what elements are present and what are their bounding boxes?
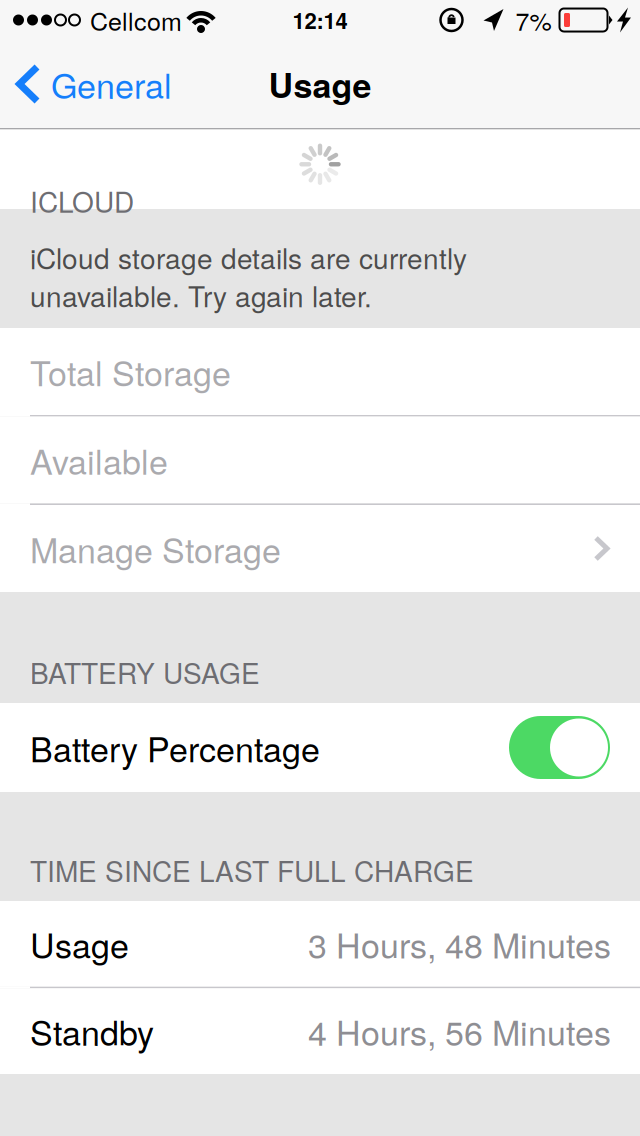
button[interactable]: Usage xyxy=(0,901,640,987)
button[interactable]: Available xyxy=(0,416,640,503)
staticText: Usage xyxy=(268,60,371,108)
staticText: Cellcom xyxy=(90,2,182,38)
staticText: 7% xyxy=(515,2,551,38)
button[interactable]: General xyxy=(0,40,184,128)
staticText: 3 Hours, 48 Minutes xyxy=(308,919,611,968)
staticText: Available xyxy=(30,436,168,484)
staticText: Battery Percentage xyxy=(30,723,320,772)
staticText: Standby xyxy=(30,1007,154,1055)
button[interactable]: Total Storage xyxy=(0,328,640,415)
staticText: Usage xyxy=(30,919,129,968)
button[interactable]: Battery Percentage xyxy=(0,703,640,792)
staticText: Total Storage xyxy=(30,347,231,396)
staticText: ICLOUD xyxy=(30,180,134,221)
staticText: 4 Hours, 56 Minutes xyxy=(308,1007,611,1055)
staticText: TIME SINCE LAST FULL CHARGE xyxy=(30,850,474,890)
button[interactable]: Manage Storage xyxy=(0,505,640,592)
staticText: Manage Storage xyxy=(30,524,281,573)
staticText: iCloud storage details are currently una… xyxy=(30,237,467,315)
staticText: General xyxy=(51,60,172,108)
staticText: 12:14 xyxy=(292,4,347,36)
button[interactable]: Standby xyxy=(0,988,640,1074)
staticText: BATTERY USAGE xyxy=(30,652,260,692)
